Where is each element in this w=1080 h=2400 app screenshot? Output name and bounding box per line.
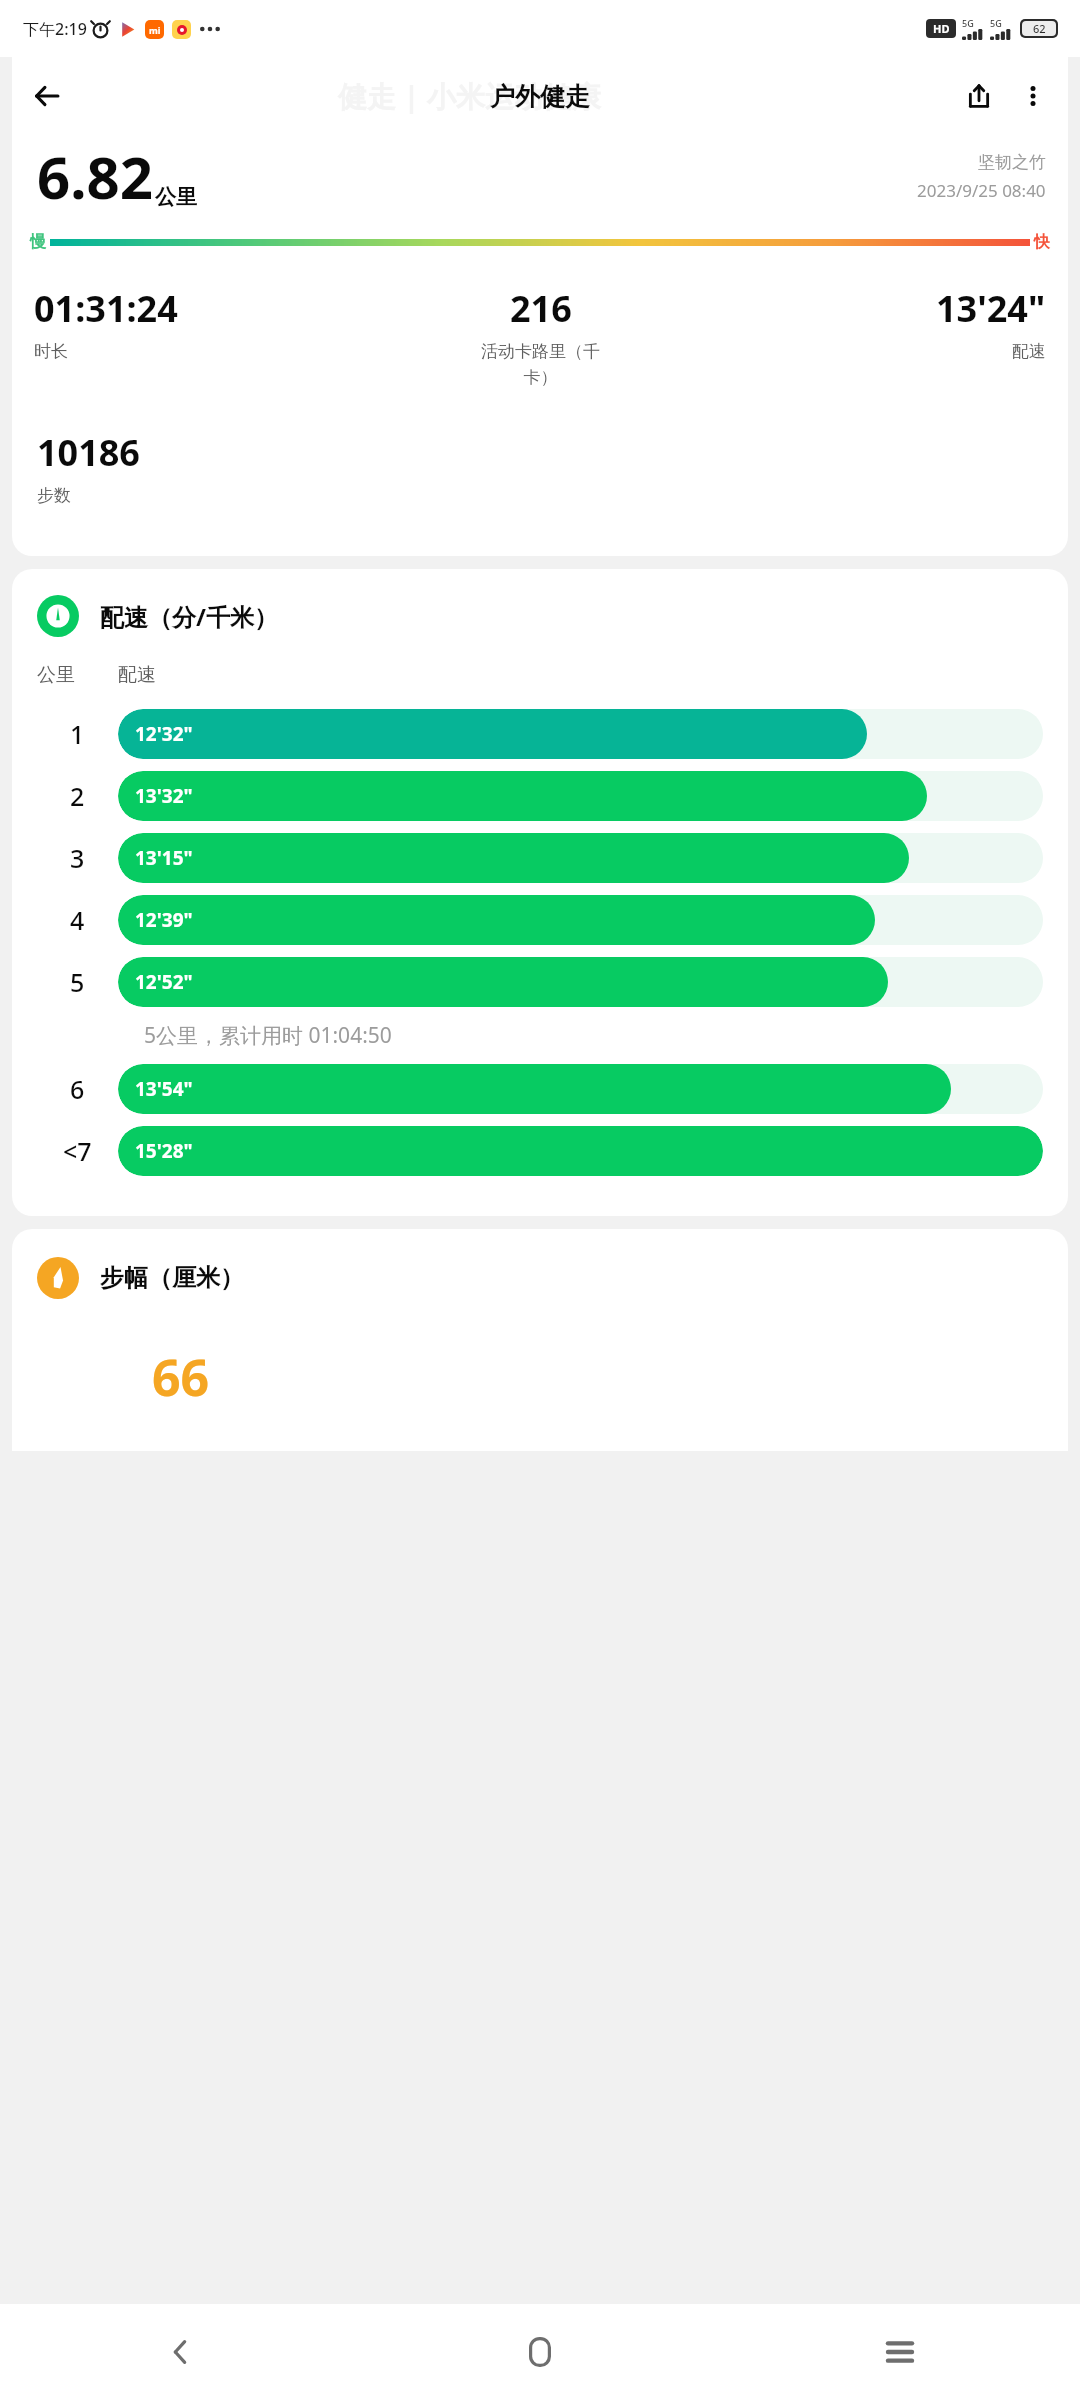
button[interactable]: Back <box>0 2304 360 2400</box>
staticText: 216 <box>510 284 572 333</box>
staticText: 12'52" <box>135 969 193 995</box>
staticText: 13'15" <box>135 845 193 871</box>
staticText: 健走 | 小米运动健康 <box>338 76 602 116</box>
staticText: 5G <box>990 17 1002 29</box>
staticText: 66 <box>152 1343 210 1411</box>
staticText: 13'54" <box>135 1076 193 1102</box>
staticText: 步数 <box>37 485 71 506</box>
staticText: 13'32" <box>135 783 193 809</box>
staticText: 62 <box>1033 21 1046 36</box>
staticText: 5G <box>962 17 974 29</box>
staticText: 活动卡路里（千 卡） <box>481 341 600 388</box>
staticText: 配速（分/千米） <box>100 600 278 633</box>
button[interactable]: 配速（分/千米） <box>37 595 1068 637</box>
staticText: 坚韧之竹 <box>978 152 1046 173</box>
staticText: 2023/9/25 08:40 <box>917 179 1046 202</box>
staticText: 5公里，累计用时 01:04:50 <box>144 1021 392 1050</box>
staticText: 1 <box>70 717 85 751</box>
button[interactable]: Recents <box>720 2304 1080 2400</box>
button[interactable]: Share <box>952 69 1006 123</box>
staticText: 10186 <box>37 428 140 477</box>
staticText: 户外健走 <box>490 81 590 112</box>
button[interactable]: 1 <box>37 703 1043 765</box>
staticText: 步幅（厘米） <box>100 1263 244 1293</box>
staticText: 12'32" <box>135 721 193 747</box>
button[interactable]: 2 <box>37 765 1043 827</box>
button[interactable]: 3 <box>37 827 1043 889</box>
button[interactable]: Home <box>360 2304 720 2400</box>
staticText: 下午2:19 <box>23 18 87 40</box>
button[interactable]: <7 <box>37 1120 1043 1182</box>
staticText: 4 <box>70 903 85 937</box>
button[interactable]: 6 <box>37 1058 1043 1120</box>
button[interactable]: 4 <box>37 889 1043 951</box>
staticText: 慢 <box>30 232 46 252</box>
staticText: 12'39" <box>135 907 193 933</box>
staticText: mi <box>149 24 161 36</box>
button[interactable]: Back <box>20 69 74 123</box>
staticText: 01:31:24 <box>34 284 178 333</box>
staticText: 公里 <box>155 184 197 210</box>
staticText: 3 <box>70 841 85 875</box>
staticText: 15'28" <box>135 1138 193 1164</box>
staticText: 2 <box>70 779 85 813</box>
staticText: 快 <box>1034 232 1050 252</box>
staticText: 公里 <box>37 663 75 687</box>
staticText: 6 <box>70 1072 85 1106</box>
button[interactable]: 步幅（厘米） <box>37 1257 1068 1299</box>
staticText: 6.82 <box>37 137 153 216</box>
staticText: 5 <box>70 965 85 999</box>
button[interactable]: More options <box>1006 69 1060 123</box>
staticText: HD <box>933 21 950 36</box>
staticText: 配速 <box>118 663 156 687</box>
staticText: 13'24" <box>936 284 1046 333</box>
staticText: 时长 <box>34 341 68 362</box>
button[interactable]: 5 <box>37 951 1043 1013</box>
staticText: 配速 <box>1012 341 1046 362</box>
staticText: <7 <box>63 1134 92 1168</box>
